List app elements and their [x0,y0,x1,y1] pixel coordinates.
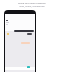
staticText: chat, share, collaborate [19,5,45,8]
staticText: Bring your team together [18,2,46,5]
